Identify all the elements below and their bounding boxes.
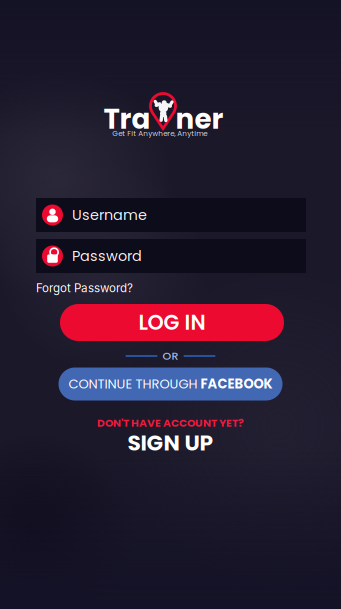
staticText: OR <box>162 348 178 364</box>
button[interactable]: Password <box>36 239 306 273</box>
staticText: DON'T HAVE ACCOUNT YET? <box>97 415 244 430</box>
staticText: Password <box>72 246 142 266</box>
staticText: LOG IN <box>138 308 205 337</box>
staticText: SIGN UP <box>127 428 213 458</box>
staticText: ner <box>175 100 223 138</box>
staticText: CONTINUE THROUGH <box>68 375 200 393</box>
button[interactable]: Forgot Password? <box>36 278 306 298</box>
button[interactable]: SIGN UP <box>127 428 213 458</box>
staticText: Tra <box>103 100 150 138</box>
staticText: Get Fit Anywhere, Anytime <box>112 128 207 139</box>
staticText: Username <box>72 205 147 225</box>
button[interactable]: Username <box>36 198 306 232</box>
button[interactable]: CONTINUE THROUGH <box>58 367 282 400</box>
button[interactable]: LOG IN <box>60 304 284 341</box>
staticText: Forgot Password? <box>36 281 133 295</box>
staticText: FACEBOOK <box>200 375 272 393</box>
